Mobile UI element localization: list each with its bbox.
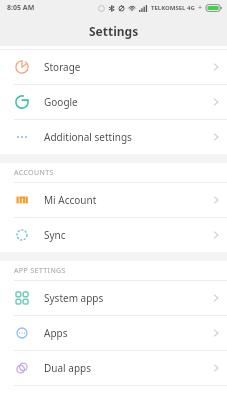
- button[interactable]: Apps: [0, 316, 227, 350]
- staticText: Settings: [89, 23, 139, 39]
- button[interactable]: Dual apps: [0, 351, 227, 385]
- staticText: Apps: [44, 326, 205, 340]
- staticText: Storage: [44, 60, 205, 74]
- button[interactable]: Mi Account: [0, 183, 227, 217]
- button[interactable]: Sync: [0, 218, 227, 252]
- staticText: Dual apps: [44, 361, 205, 375]
- button[interactable]: Storage: [0, 50, 227, 84]
- button[interactable]: Additional settings: [0, 120, 227, 154]
- staticText: Google: [44, 95, 205, 109]
- staticText: Additional settings: [44, 130, 205, 144]
- staticText: Sync: [44, 228, 205, 242]
- staticText: 8:05 AM: [7, 3, 35, 13]
- staticText: APP SETTINGS: [14, 266, 66, 276]
- button[interactable]: Google: [0, 85, 227, 119]
- staticText: +: [198, 3, 203, 13]
- button[interactable]: System apps: [0, 281, 227, 315]
- staticText: ACCOUNTS: [14, 168, 54, 178]
- staticText: TELKOMSEL 4G: [151, 4, 195, 12]
- staticText: System apps: [44, 291, 205, 305]
- staticText: Mi Account: [44, 193, 205, 207]
